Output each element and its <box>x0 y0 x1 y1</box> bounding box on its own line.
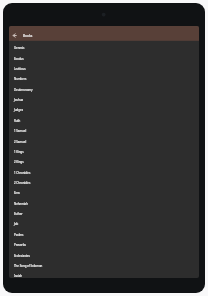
button[interactable]: The Song of Solomon <box>9 261 199 271</box>
staticText: 2 Chronicles <box>14 181 31 185</box>
staticText: Leviticus <box>14 67 26 71</box>
staticText: 2 Kings <box>14 160 24 164</box>
staticText: Proverbs <box>14 243 26 247</box>
staticText: Deuteronomy <box>14 88 33 92</box>
staticText: 1 Chronicles <box>14 171 31 175</box>
button[interactable]: Genesis <box>9 43 199 53</box>
staticText: Job <box>14 222 19 226</box>
staticText: Psalms <box>14 233 24 237</box>
staticText: Esther <box>14 212 23 216</box>
button[interactable]: 1 Kings <box>9 147 199 157</box>
staticText: Exodus <box>14 57 24 61</box>
staticText: Nehemiah <box>14 202 28 206</box>
button[interactable]: Ezra <box>9 188 199 198</box>
button[interactable]: Exodus <box>9 54 199 64</box>
staticText: 2 Samuel <box>14 140 27 144</box>
staticText: Genesis <box>14 46 25 50</box>
button[interactable]: 2 Samuel <box>9 137 199 147</box>
button[interactable]: Judges <box>9 105 199 115</box>
button[interactable]: 2 Kings <box>9 157 199 167</box>
button[interactable]: Psalms <box>9 230 199 240</box>
button[interactable]: 2 Chronicles <box>9 178 199 188</box>
staticText: Numbers <box>14 77 27 81</box>
button[interactable]: Numbers <box>9 74 199 84</box>
button[interactable]: 1 Chronicles <box>9 168 199 178</box>
staticText: Ecclesiastes <box>14 254 30 258</box>
button[interactable]: Navigate back <box>9 29 20 41</box>
staticText: Joshua <box>14 98 23 102</box>
button[interactable]: Job <box>9 219 199 229</box>
button[interactable]: Proverbs <box>9 240 199 250</box>
button[interactable]: Leviticus <box>9 64 199 74</box>
button[interactable]: Ruth <box>9 116 199 126</box>
staticText: 1 Kings <box>14 150 24 154</box>
staticText: Ezra <box>14 191 20 195</box>
staticText: Judges <box>14 108 23 112</box>
button[interactable]: Nehemiah <box>9 199 199 209</box>
button[interactable]: Esther <box>9 209 199 219</box>
staticText: Isaiah <box>14 274 23 278</box>
button[interactable]: Joshua <box>9 95 199 105</box>
button[interactable]: Isaiah <box>9 271 199 278</box>
button[interactable]: Ecclesiastes <box>9 251 199 261</box>
staticText: 1 Samuel <box>14 129 27 133</box>
staticText: Ruth <box>14 119 21 123</box>
button[interactable]: 1 Samuel <box>9 126 199 136</box>
staticText: Books <box>23 34 33 38</box>
staticText: The Song of Solomon <box>14 264 43 268</box>
button[interactable]: Deuteronomy <box>9 85 199 95</box>
